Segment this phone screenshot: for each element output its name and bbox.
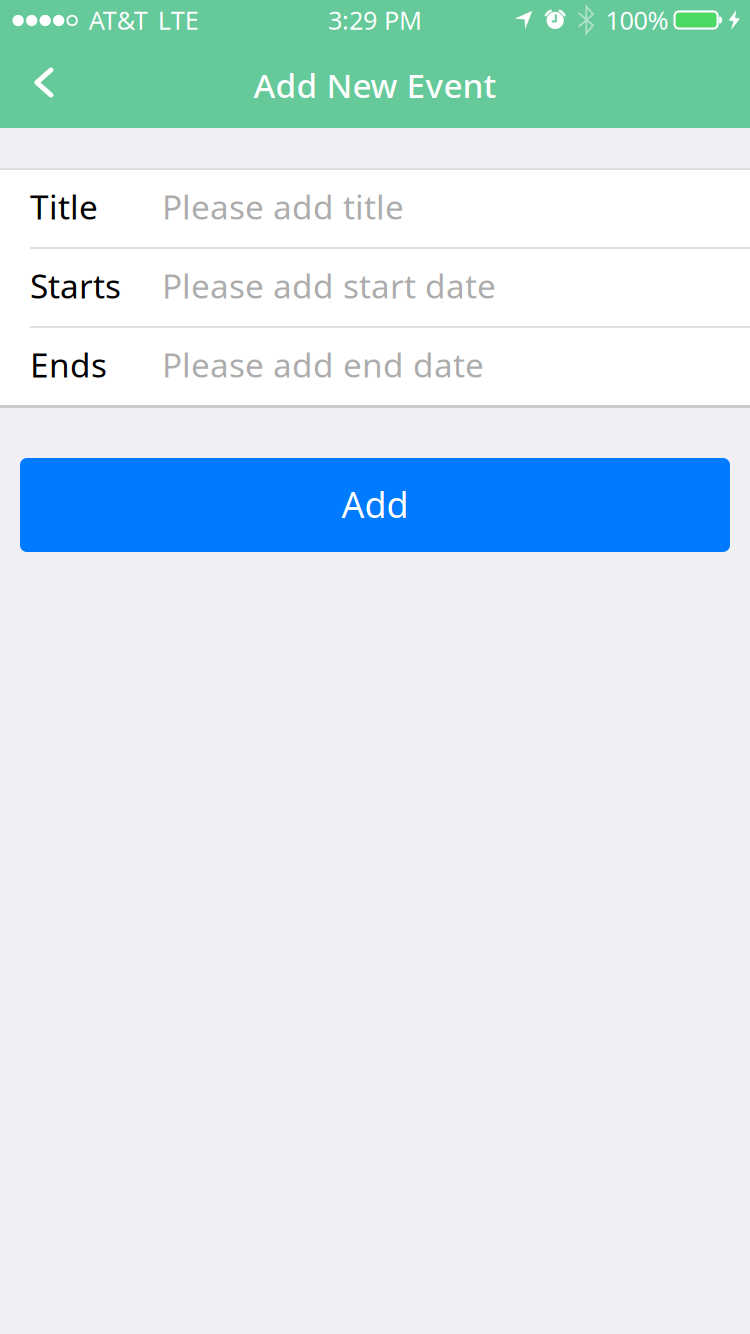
button[interactable]: Title xyxy=(0,170,750,247)
staticText: Please add end date xyxy=(162,342,484,387)
button[interactable]: Back xyxy=(34,48,96,120)
staticText: Add New Event xyxy=(253,63,496,107)
staticText: Please add start date xyxy=(162,263,496,308)
button[interactable]: Starts xyxy=(0,249,750,326)
staticText: Starts xyxy=(30,263,121,308)
staticText: 100% xyxy=(605,3,668,37)
staticText: 3:29 PM xyxy=(328,3,422,37)
button[interactable]: Ends xyxy=(0,328,750,405)
staticText: Add xyxy=(341,480,408,528)
staticText: Please add title xyxy=(162,184,404,229)
staticText: Title xyxy=(30,184,98,229)
staticText: Ends xyxy=(30,342,107,387)
staticText: AT&T xyxy=(89,3,148,37)
staticText: LTE xyxy=(158,3,199,37)
button[interactable]: Add xyxy=(20,458,730,552)
